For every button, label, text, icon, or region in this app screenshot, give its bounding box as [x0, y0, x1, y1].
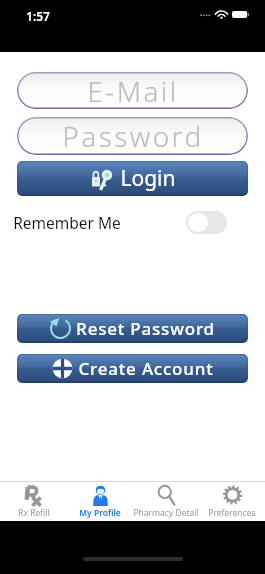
button[interactable]: Preferences	[199, 482, 265, 521]
button[interactable]: Remember Me toggle	[186, 211, 227, 234]
staticText: Remember Me	[13, 212, 121, 233]
button[interactable]: Reset Password	[17, 314, 248, 343]
button[interactable]: E-Mail	[17, 72, 248, 109]
staticText: My Profile	[79, 507, 121, 519]
staticText: E-Mail	[87, 72, 179, 109]
staticText: Create Account	[78, 357, 214, 380]
button[interactable]: Password	[17, 117, 248, 155]
staticText: Login	[120, 164, 176, 193]
button[interactable]: Create Account	[17, 354, 248, 383]
button[interactable]: Pharmacy Detail	[133, 482, 199, 521]
staticText: Pharmacy Detail	[133, 507, 199, 519]
staticText: 1:57	[26, 8, 50, 24]
button[interactable]: Login	[17, 161, 248, 196]
button[interactable]: My Profile	[67, 482, 133, 521]
button[interactable]: Rx Refill	[0, 482, 67, 521]
staticText: Password	[62, 117, 204, 155]
staticText: Reset Password	[76, 317, 215, 340]
staticText: Preferences	[208, 507, 256, 519]
staticText: Rx Refill	[18, 507, 50, 519]
